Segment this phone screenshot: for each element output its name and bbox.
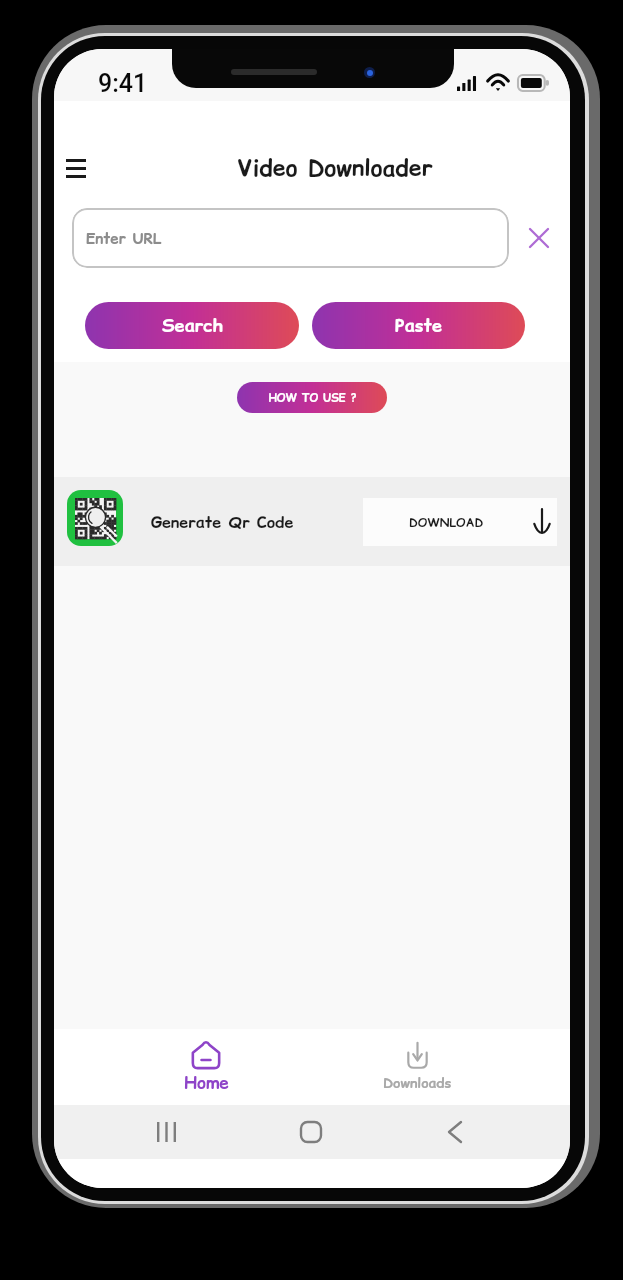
staticText: Home bbox=[184, 1071, 229, 1095]
button[interactable]: Home bbox=[281, 1105, 341, 1159]
button[interactable]: Search bbox=[85, 302, 299, 349]
button[interactable]: Enter URL bbox=[72, 208, 509, 268]
button[interactable]: Menu bbox=[54, 145, 100, 191]
button[interactable]: Downloads bbox=[357, 1029, 477, 1105]
button[interactable]: Clear bbox=[509, 208, 570, 268]
button[interactable]: HOW TO USE ? bbox=[237, 382, 387, 413]
button[interactable]: Paste bbox=[312, 302, 525, 349]
button[interactable]: Home bbox=[146, 1029, 266, 1105]
staticText: Downloads bbox=[383, 1073, 452, 1093]
staticText: Search bbox=[162, 313, 223, 338]
staticText: HOW TO USE ? bbox=[268, 390, 357, 405]
staticText: Generate Qr Code bbox=[151, 511, 294, 533]
staticText: Paste bbox=[395, 313, 442, 338]
staticText: Video Downloader bbox=[237, 152, 433, 184]
staticText: 9:41 bbox=[98, 69, 148, 98]
button[interactable]: Recents bbox=[136, 1105, 197, 1159]
staticText: DOWNLOAD bbox=[409, 514, 484, 531]
button[interactable]: Generate Qr Code bbox=[54, 477, 570, 566]
staticText: Enter URL bbox=[86, 228, 162, 249]
button[interactable]: Back bbox=[425, 1105, 485, 1159]
button[interactable]: DOWNLOAD bbox=[363, 498, 557, 546]
